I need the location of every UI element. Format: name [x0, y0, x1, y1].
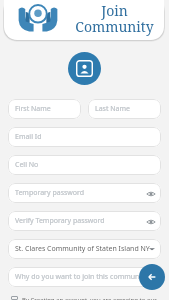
button[interactable]: Back [139, 264, 165, 290]
button[interactable]: St. Clares Community of Staten Island NY [8, 239, 161, 259]
other: Agree to terms [11, 296, 18, 300]
staticText: Verify Temporary password [15, 216, 105, 226]
button[interactable]: Why do you want to join this community? [8, 267, 161, 287]
button[interactable]: Email Id [8, 127, 161, 147]
button[interactable]: Profile photo [68, 52, 101, 85]
staticText: First Name [15, 104, 51, 114]
button[interactable]: Last Name [88, 99, 161, 119]
staticText: Cell No [15, 160, 39, 170]
button[interactable]: Agree to terms [11, 296, 169, 300]
staticText: St. Clares Community of Staten Island NY [15, 244, 150, 254]
staticText: Join [101, 1, 128, 20]
button[interactable]: Verify Temporary password [8, 211, 161, 231]
staticText: Temporary password [15, 188, 85, 198]
button[interactable]: Show password [145, 188, 156, 199]
button[interactable]: Cell No [8, 155, 161, 175]
staticText: Community [75, 17, 154, 36]
staticText: Why do you want to join this community? [15, 272, 151, 282]
staticText: By Creating an account, you are agreeing… [22, 296, 157, 300]
staticText: Last Name [95, 104, 131, 114]
button[interactable]: Temporary password [8, 183, 161, 203]
button[interactable]: First Name [8, 99, 81, 119]
staticText: Email Id [15, 132, 42, 142]
other: Community logo [16, 3, 60, 33]
button[interactable]: Show password [145, 216, 156, 227]
